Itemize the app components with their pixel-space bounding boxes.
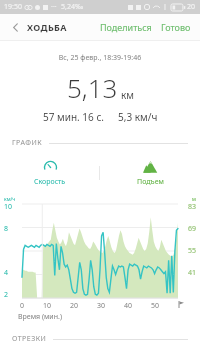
staticText: 5,13 bbox=[67, 70, 118, 105]
staticText: 19:50 bbox=[4, 2, 22, 12]
staticText: 83 bbox=[188, 202, 197, 212]
button[interactable]: Скорость bbox=[0, 156, 99, 190]
staticText: 55 bbox=[188, 246, 197, 256]
staticText: ХОДЬБА bbox=[27, 21, 67, 33]
button[interactable]: Подъем bbox=[100, 156, 200, 190]
staticText: ГРАФИК bbox=[12, 138, 43, 148]
staticText: 2 bbox=[4, 290, 9, 300]
staticText: 4 bbox=[4, 268, 9, 278]
staticText: Время (мин.) bbox=[18, 312, 62, 322]
staticText: 5,3 км/ч bbox=[118, 110, 158, 124]
staticText: 10 bbox=[4, 202, 13, 212]
button[interactable]: Поделиться bbox=[97, 17, 155, 37]
staticText: 50 bbox=[151, 301, 160, 311]
staticText: 57 мин. 16 с. bbox=[43, 110, 104, 124]
staticText: 41 bbox=[188, 268, 197, 278]
staticText: км bbox=[121, 88, 134, 102]
staticText: 5,24‰ bbox=[61, 2, 84, 12]
staticText: 69 bbox=[188, 224, 197, 234]
staticText: 0 bbox=[20, 301, 25, 311]
staticText: 20 bbox=[187, 2, 196, 12]
staticText: 30 bbox=[97, 301, 106, 311]
staticText: Поделиться bbox=[100, 21, 152, 33]
button[interactable]: Назад bbox=[6, 18, 24, 36]
staticText: 40 bbox=[124, 301, 133, 311]
staticText: ОТРЕЗКИ bbox=[12, 334, 47, 344]
staticText: Скорость bbox=[34, 177, 66, 187]
button[interactable]: Готово bbox=[159, 17, 193, 37]
staticText: Готово bbox=[161, 21, 191, 33]
staticText: 10 bbox=[43, 301, 52, 311]
staticText: м bbox=[192, 196, 196, 203]
staticText: Подъем bbox=[137, 177, 164, 187]
staticText: 8 bbox=[4, 224, 9, 234]
staticText: Вс, 25 февр., 18:39-19:46 bbox=[0, 53, 200, 63]
staticText: 20 bbox=[70, 301, 79, 311]
staticText: ··· bbox=[51, 2, 57, 12]
staticText: км/ч bbox=[4, 196, 16, 203]
